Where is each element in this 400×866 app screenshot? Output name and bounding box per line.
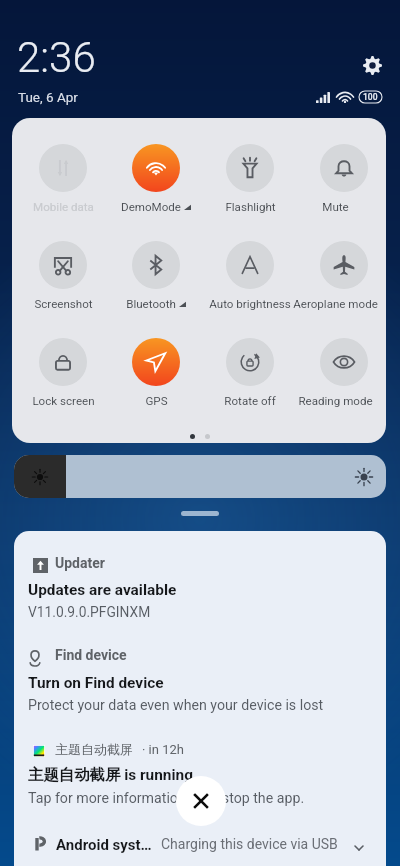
button[interactable]	[17, 237, 109, 309]
staticText: 主题自动截屏 is running	[28, 765, 193, 784]
button[interactable]	[204, 334, 296, 406]
staticText: Mobile data	[33, 200, 94, 214]
staticText: Bluetooth	[126, 297, 176, 311]
staticText: Tap for more information or to stop the …	[28, 790, 305, 807]
button[interactable]: Close	[176, 776, 226, 826]
button[interactable]: Settings	[354, 47, 390, 83]
button[interactable]	[110, 334, 202, 406]
staticText: Reading mode	[298, 394, 373, 408]
staticText: 2:36	[17, 33, 96, 82]
staticText: Screenshot	[34, 297, 93, 311]
button[interactable]: Brightness	[14, 455, 386, 498]
button[interactable]	[110, 140, 202, 212]
button[interactable]	[14, 731, 386, 821]
staticText: Tue, 6 Apr	[18, 89, 78, 105]
button[interactable]	[14, 827, 386, 866]
button[interactable]	[298, 237, 390, 309]
staticText: Updates are available	[28, 581, 177, 599]
staticText: Lock screen	[32, 394, 95, 408]
staticText: Flashlight	[225, 200, 276, 214]
staticText: Android syst…	[56, 836, 152, 854]
staticText: · in 12h	[142, 742, 184, 757]
staticText: 100	[363, 92, 378, 102]
staticText: V11.0.9.0.PFGINXM	[28, 604, 151, 620]
staticText: Aeroplane mode	[293, 297, 378, 311]
staticText: Auto brightness	[209, 297, 291, 311]
staticText: DemoMode	[121, 200, 181, 214]
staticText: Charging this device via USB	[161, 836, 338, 852]
button[interactable]	[110, 237, 202, 309]
staticText: Find device	[55, 647, 127, 663]
button[interactable]	[204, 140, 296, 212]
staticText: 主题自动截屏	[55, 741, 133, 757]
button[interactable]	[204, 237, 296, 309]
button[interactable]	[298, 334, 390, 406]
staticText: Updater	[55, 555, 105, 571]
button[interactable]	[14, 545, 386, 625]
staticText: Mute	[322, 200, 349, 214]
staticText: Rotate off	[224, 394, 276, 408]
staticText: GPS	[145, 394, 168, 408]
button[interactable]	[17, 140, 109, 212]
staticText: Turn on Find device	[28, 674, 164, 692]
staticText: Protect your data even when your device …	[28, 697, 324, 714]
button[interactable]	[298, 140, 390, 212]
button[interactable]	[14, 638, 386, 730]
button[interactable]	[17, 334, 109, 406]
